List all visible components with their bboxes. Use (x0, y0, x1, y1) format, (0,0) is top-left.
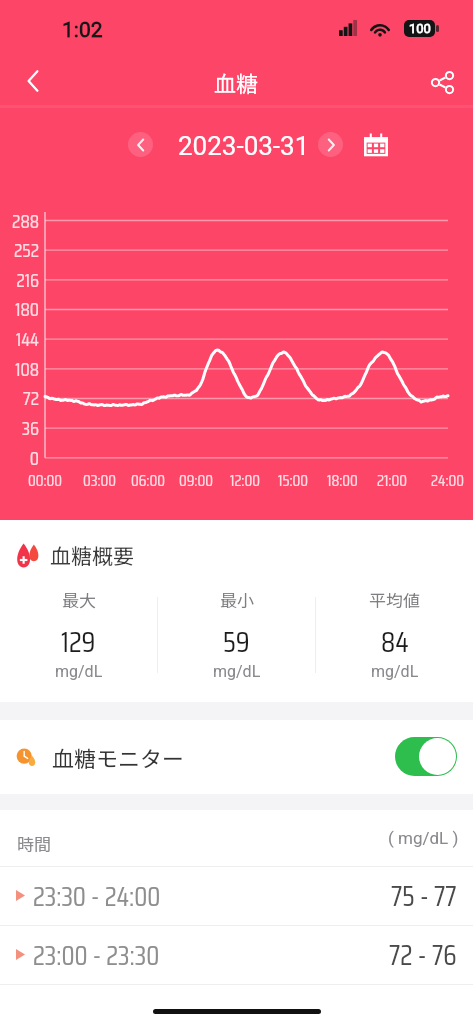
staticText: 108 (15, 354, 39, 384)
button[interactable]: 23:00 - 23:30 (0, 926, 473, 984)
button[interactable]: 血糖モニター (0, 720, 473, 794)
staticText: 00:00 (28, 468, 63, 493)
staticText: 最小 (220, 587, 254, 612)
staticText: 75 - 77 (391, 874, 457, 918)
button[interactable]: 23:30 - 24:00 (0, 867, 473, 925)
staticText: 03:00 (83, 468, 117, 493)
button[interactable]: Calendar (358, 127, 393, 162)
staticText: 23:00 - 23:30 (33, 934, 160, 976)
staticText: 09:00 (179, 468, 213, 493)
button[interactable]: Share (419, 59, 465, 105)
staticText: 2023-03-31 (178, 131, 310, 161)
staticText: mg/dL (55, 662, 103, 681)
button[interactable]: Back (8, 56, 58, 106)
staticText: 72 (23, 383, 39, 413)
staticText: 216 (16, 265, 39, 295)
button[interactable]: Toggle blood glucose monitor (395, 737, 457, 776)
staticText: 21:00 (377, 468, 407, 493)
staticText: mg/dL (371, 662, 419, 681)
staticText: 288 (12, 206, 39, 236)
staticText: mg/dL (213, 662, 261, 681)
staticText: 0 (29, 443, 39, 473)
staticText: 血糖モニター (52, 741, 185, 773)
staticText: 23:30 - 24:00 (33, 875, 161, 917)
staticText: 15:00 (278, 468, 309, 493)
staticText: 1:02 (62, 18, 103, 43)
staticText: 129 (61, 619, 96, 665)
button[interactable]: Previous day (128, 132, 153, 157)
staticText: 180 (15, 294, 39, 324)
staticText: 36 (21, 413, 39, 443)
staticText: 252 (14, 235, 39, 265)
staticText: 59 (223, 619, 250, 665)
staticText: 血糖 (214, 66, 259, 98)
staticText: ( mg/dL ) (388, 828, 459, 848)
staticText: 最大 (62, 587, 96, 612)
staticText: 血糖概要 (50, 540, 134, 570)
staticText: 12:00 (230, 468, 260, 493)
staticText: 100 (409, 21, 431, 36)
staticText: 84 (381, 619, 409, 665)
staticText: 平均値 (369, 587, 420, 612)
staticText: 18:00 (327, 468, 358, 493)
staticText: 06:00 (131, 468, 165, 493)
staticText: 144 (16, 324, 39, 354)
staticText: 72 - 76 (389, 933, 457, 977)
button[interactable]: Next day (318, 132, 343, 157)
staticText: 24:00 (431, 468, 465, 493)
staticText: 時間 (17, 831, 51, 856)
